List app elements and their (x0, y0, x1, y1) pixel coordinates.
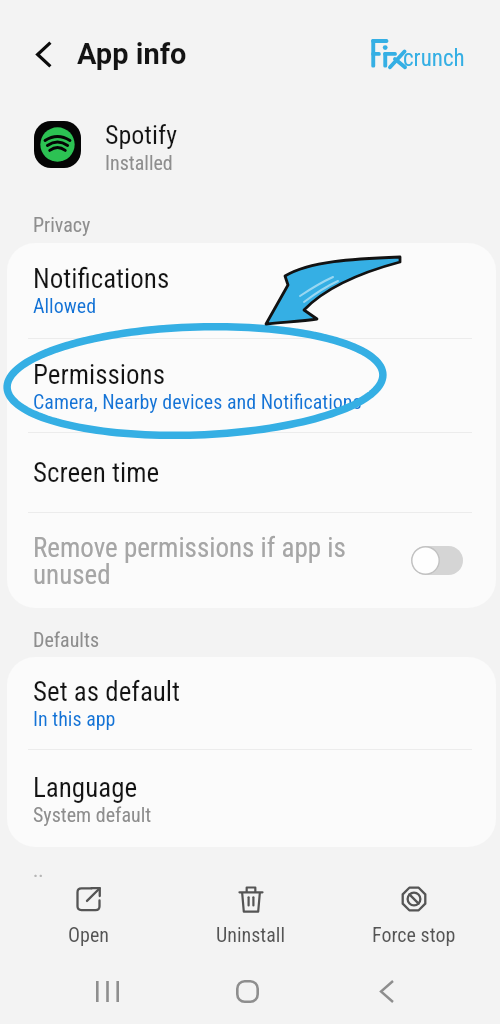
button[interactable]: Recent apps (37, 957, 177, 1024)
staticText: Installed (105, 151, 173, 174)
button[interactable]: Set as default (7, 657, 496, 749)
staticText: System default (33, 803, 152, 826)
staticText: Uninstall (216, 923, 285, 946)
button[interactable]: Back (317, 957, 457, 1024)
button[interactable]: Uninstall (174, 866, 327, 952)
button[interactable]: Language (7, 750, 496, 847)
staticText: App info (77, 37, 187, 71)
staticText: Language (33, 772, 138, 804)
staticText: Remove permissions if app is unused (33, 532, 353, 591)
button[interactable]: Back (24, 34, 64, 74)
button[interactable]: Notifications (7, 243, 496, 338)
staticText: Allowed (33, 294, 97, 317)
staticText: crunch (403, 45, 465, 72)
staticText: Defaults (33, 628, 99, 651)
staticText: Force stop (372, 923, 456, 946)
staticText: Notifications (33, 263, 170, 295)
button[interactable]: Fixcrunch (368, 36, 463, 72)
staticText: .. (33, 858, 44, 881)
staticText: Open (68, 923, 109, 946)
staticText: Set as default (33, 676, 181, 708)
staticText: Privacy (33, 213, 91, 236)
button[interactable]: Remove permissions if app is unused (7, 513, 496, 608)
button[interactable]: Screen time (7, 433, 496, 512)
staticText: Spotify (105, 120, 178, 150)
staticText: Permissions (33, 359, 165, 391)
staticText: In this app (33, 707, 116, 730)
button[interactable]: Home (177, 957, 317, 1024)
button[interactable]: Permissions (7, 339, 496, 432)
staticText: Camera, Nearby devices and Notifications (33, 390, 362, 413)
button[interactable]: Force stop (337, 866, 490, 952)
staticText: Screen time (33, 457, 160, 489)
button[interactable]: Open (12, 866, 165, 952)
